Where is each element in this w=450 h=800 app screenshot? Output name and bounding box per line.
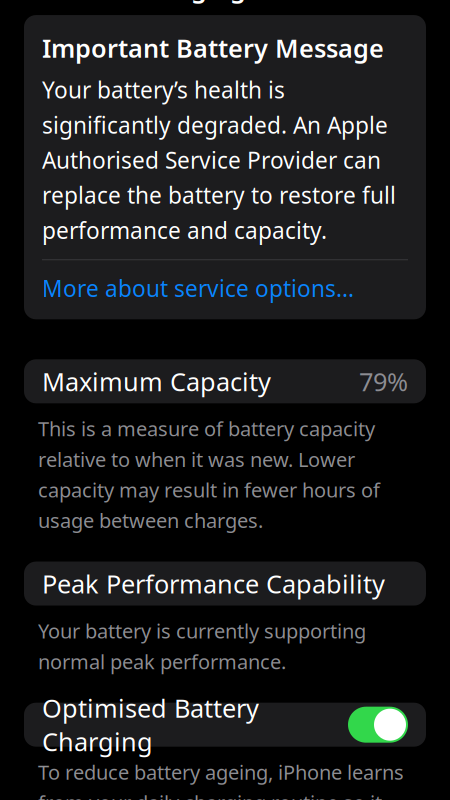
staticText: Battery Health & Charging — [133, 0, 340, 5]
staticText: 79% — [359, 364, 408, 398]
staticText: Maximum Capacity — [42, 364, 271, 398]
button[interactable]: Peak Performance Capability — [0, 562, 450, 606]
button[interactable]: More about service options... — [42, 273, 408, 303]
staticText: Important Battery Message — [42, 31, 384, 65]
staticText: More about service options... — [42, 273, 354, 303]
staticText: Peak Performance Capability — [42, 567, 385, 600]
staticText: To reduce battery ageing, iPhone learns … — [38, 759, 404, 800]
staticText: This is a measure of battery capacity re… — [38, 415, 380, 533]
staticText: Your battery’s health is significantly d… — [42, 75, 396, 245]
staticText: Optimised Battery Charging — [42, 691, 259, 758]
staticText: Your battery is currently supporting nor… — [38, 618, 366, 675]
button[interactable]: Optimised Battery Charging — [0, 703, 450, 747]
